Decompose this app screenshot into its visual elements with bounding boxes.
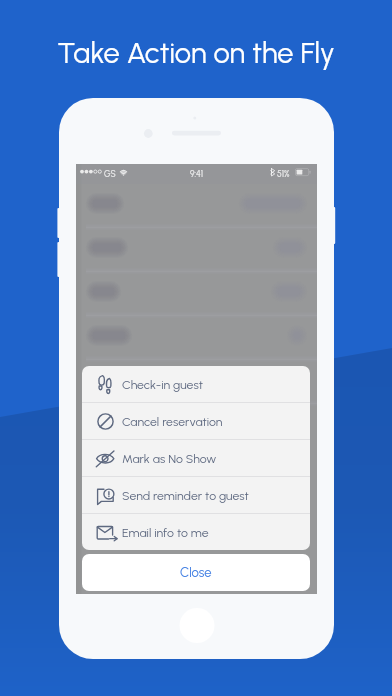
staticText: Close bbox=[180, 565, 212, 581]
staticText: Take Action on the Fly bbox=[57, 35, 335, 70]
button[interactable]: Cancel reservation bbox=[82, 403, 310, 439]
staticText: Send reminder to guest bbox=[122, 488, 249, 503]
staticText: Check-in guest bbox=[122, 377, 203, 392]
staticText: GS bbox=[104, 169, 116, 179]
button[interactable]: Mark as No Show bbox=[82, 440, 310, 476]
button[interactable]: Send reminder to guest bbox=[82, 477, 310, 513]
staticText: 51% bbox=[277, 169, 290, 179]
staticText: Email info to me bbox=[122, 525, 209, 540]
button[interactable]: Close bbox=[82, 554, 310, 591]
staticText: Cancel reservation bbox=[122, 414, 223, 429]
staticText: 9:41 bbox=[190, 169, 203, 179]
button[interactable]: Check-in guest bbox=[82, 366, 310, 402]
button[interactable]: Email info to me bbox=[82, 514, 310, 550]
staticText: Mark as No Show bbox=[122, 451, 217, 466]
